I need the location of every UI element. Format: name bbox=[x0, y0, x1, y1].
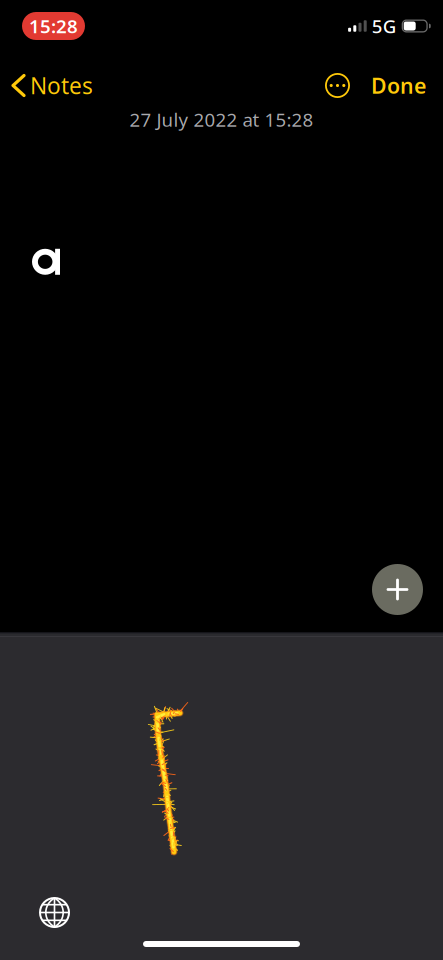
staticText: Done bbox=[371, 71, 426, 100]
button[interactable]: More bbox=[313, 63, 350, 108]
button[interactable]: Switch keyboard bbox=[27, 878, 82, 933]
staticText: Notes bbox=[30, 70, 93, 100]
staticText: 5G bbox=[372, 14, 397, 38]
staticText: 27 July 2022 at 15:28 bbox=[129, 107, 313, 132]
button[interactable]: Done bbox=[371, 65, 426, 106]
button[interactable]: Notes bbox=[0, 64, 104, 106]
staticText: 15:28 bbox=[29, 14, 78, 38]
button[interactable]: Add attachment bbox=[372, 564, 423, 615]
